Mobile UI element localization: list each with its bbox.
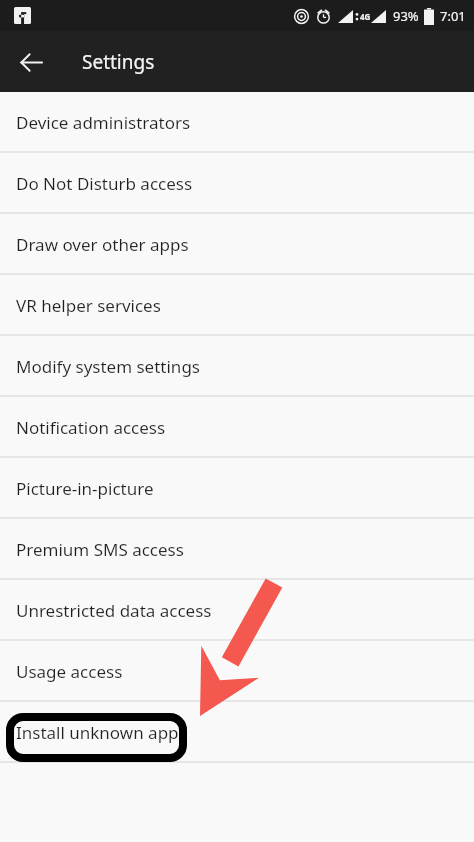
staticText: Notification access [16,416,166,439]
staticText: Picture-in-picture [16,477,154,500]
button[interactable]: Device administrators [0,92,474,153]
staticText: VR helper services [16,294,161,317]
button[interactable]: Usage access [0,641,474,702]
button[interactable]: Notification access [0,397,474,458]
staticText: Settings [82,49,155,75]
staticText: Device administrators [16,111,191,134]
staticText: Draw over other apps [16,233,189,256]
staticText: 93% [393,7,419,25]
button[interactable]: VR helper services [0,275,474,336]
staticText: Modify system settings [16,355,200,378]
staticText: Install unknown apps [16,721,187,744]
staticText: Do Not Disturb access [16,172,193,195]
staticText: 4G [360,11,371,22]
staticText: Usage access [16,660,123,683]
button[interactable]: Modify system settings [0,336,474,397]
button[interactable]: Unrestricted data access [0,580,474,641]
staticText: 7:01 [440,7,466,25]
button[interactable]: Back [12,43,50,81]
button[interactable]: Do Not Disturb access [0,153,474,214]
button[interactable]: Picture-in-picture [0,458,474,519]
staticText: Unrestricted data access [16,599,212,622]
button[interactable]: Draw over other apps [0,214,474,275]
button[interactable]: Install unknown apps [0,702,474,763]
button[interactable]: Premium SMS access [0,519,474,580]
staticText: Premium SMS access [16,538,184,561]
